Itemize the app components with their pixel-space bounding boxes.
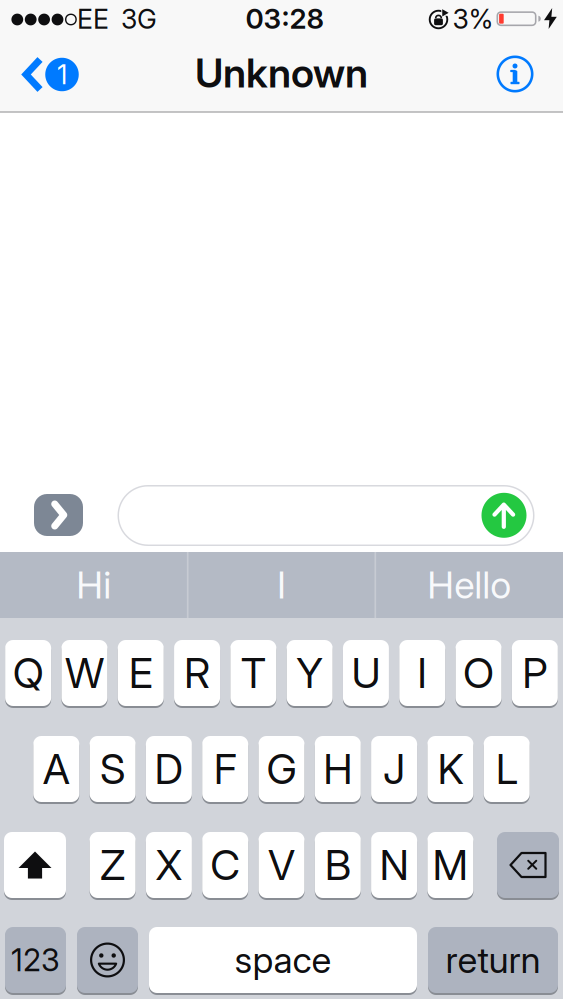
staticText: 3% [452,3,493,35]
button[interactable]: Y [287,639,333,707]
button[interactable]: Back [0,38,90,111]
staticText: T [241,648,266,698]
button[interactable]: D [146,735,192,803]
staticText: C [210,840,240,890]
button[interactable]: H [315,735,361,803]
button[interactable]: L [484,735,530,803]
staticText: B [325,840,351,890]
staticText: E [129,648,153,698]
button[interactable]: Emoji [77,926,138,994]
staticText: V [268,840,295,890]
button[interactable]: K [427,735,473,803]
staticText: L [496,744,518,794]
button[interactable]: I [399,639,445,707]
staticText: I [277,562,286,608]
button[interactable]: M [427,831,473,899]
button[interactable]: P [512,639,558,707]
button[interactable]: V [258,831,304,899]
staticText: 3G [121,3,157,35]
button[interactable]: G [258,735,304,803]
button[interactable]: Hi [1,552,187,618]
button[interactable]: return [428,926,558,994]
button[interactable]: space [149,926,417,994]
button[interactable]: I [188,552,374,618]
staticText: F [214,744,237,794]
button[interactable]: U [343,639,389,707]
staticText: J [383,744,405,794]
button[interactable]: 123 [5,926,66,994]
staticText: A [43,744,70,794]
button[interactable]: X [146,831,192,899]
staticText: W [65,648,104,698]
staticText: Hi [76,562,111,608]
staticText: U [351,648,380,698]
button[interactable]: Z [90,831,136,899]
button[interactable]: E [118,639,164,707]
staticText: S [100,744,125,794]
button[interactable]: Hello [376,552,562,618]
staticText: R [184,648,210,698]
button[interactable]: B [315,831,361,899]
button[interactable]: N [371,831,417,899]
staticText: Unknown [195,49,368,97]
staticText: Y [296,648,323,698]
button[interactable]: Shift [4,831,66,899]
staticText: 1 [57,58,67,91]
staticText: Z [100,840,125,890]
staticText: EE [77,3,109,35]
staticText: 123 [11,941,60,978]
button[interactable]: R [174,639,220,707]
staticText: P [522,648,547,698]
button[interactable]: Info [496,55,533,92]
staticText: Hello [427,562,511,608]
button[interactable]: S [90,735,136,803]
staticText: return [445,938,540,982]
staticText: K [437,744,463,794]
button[interactable]: T [230,639,276,707]
button[interactable]: C [202,831,248,899]
button[interactable]: F [202,735,248,803]
staticText: D [154,744,183,794]
staticText: N [380,840,409,890]
button[interactable]: O [455,639,501,707]
staticText: space [234,938,331,982]
button[interactable]: A [33,735,79,803]
button[interactable]: Delete [497,831,559,899]
button[interactable]: Q [5,639,51,707]
staticText: X [155,840,182,890]
button[interactable]: Show more [34,494,83,536]
staticText: H [323,744,352,794]
button[interactable]: J [371,735,417,803]
staticText: I [417,648,427,698]
button[interactable]: W [61,639,107,707]
staticText: M [432,840,468,890]
staticText: Q [13,648,44,698]
staticText: 03:28 [245,2,324,35]
staticText: O [463,648,494,698]
button[interactable]: Send [481,493,526,538]
staticText: G [266,744,296,794]
